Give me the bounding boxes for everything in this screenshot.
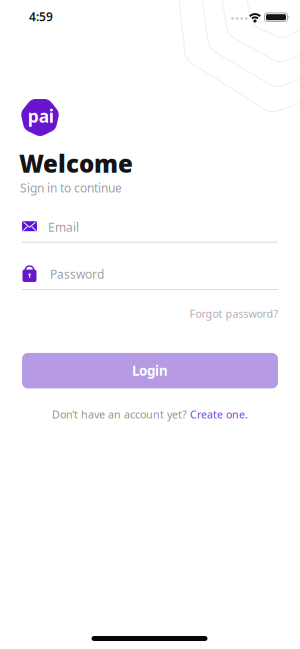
staticText: Create one.: [190, 407, 248, 421]
staticText: Don't have an account yet?: [52, 407, 187, 421]
staticText: Login: [132, 362, 168, 379]
staticText: Welcome: [19, 148, 133, 179]
staticText: 4:59: [29, 8, 53, 24]
staticText: Sign in to continue: [20, 180, 122, 196]
staticText: Password: [50, 266, 104, 282]
staticText: Forgot password?: [189, 306, 278, 321]
button[interactable]: Email: [0, 213, 300, 243]
button[interactable]: Login: [22, 353, 278, 388]
staticText: pai: [28, 104, 54, 127]
button[interactable]: Forgot password?: [189, 306, 278, 321]
staticText: Email: [48, 219, 79, 235]
button[interactable]: Don't have an account yet?: [52, 407, 248, 421]
button[interactable]: Password: [0, 260, 300, 290]
